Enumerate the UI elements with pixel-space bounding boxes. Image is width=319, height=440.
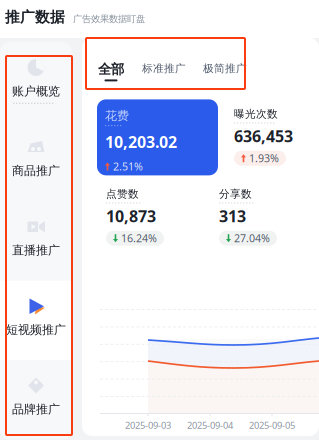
button[interactable]: 极简推广 — [203, 61, 247, 75]
button[interactable]: 全部 — [98, 61, 124, 81]
button[interactable]: 商品推广 — [0, 121, 72, 201]
staticText: 标准推广 — [142, 62, 186, 75]
staticText: 27.04% — [234, 231, 270, 245]
staticText: 点赞数 — [106, 187, 139, 200]
staticText: 商品推广 — [12, 163, 60, 178]
staticText: 分享数 — [219, 187, 252, 200]
staticText: 极简推广 — [203, 62, 247, 75]
button[interactable]: 品牌推广 — [0, 360, 72, 439]
staticText: 账户概览 — [12, 84, 60, 99]
staticText: 直播推广 — [12, 243, 60, 258]
button[interactable]: 短视频推广 — [0, 280, 72, 360]
staticText: 16.24% — [121, 231, 157, 245]
staticText: 1.93% — [249, 151, 279, 165]
staticText: 推广数据 — [5, 8, 65, 26]
staticText: 曝光次数 — [234, 107, 278, 120]
staticText: 10,873 — [106, 205, 156, 227]
staticText: 品牌推广 — [12, 402, 60, 417]
staticText: 2025-09-04 — [187, 419, 233, 431]
staticText: 短视频推广 — [6, 322, 66, 337]
staticText: 全部 — [98, 61, 124, 77]
staticText: 花费 — [105, 108, 129, 123]
staticText: 2025-09-05 — [249, 419, 295, 431]
staticText: 广告效果数据盯盘 — [73, 13, 145, 25]
staticText: 313 — [219, 205, 246, 227]
staticText: 636,453 — [234, 125, 293, 147]
staticText: 2025-09-03 — [125, 419, 171, 431]
staticText: 10,203.02 — [105, 131, 177, 152]
button[interactable]: 账户概览 — [0, 42, 72, 121]
staticText: 2.51% — [113, 159, 143, 174]
button[interactable]: 直播推广 — [0, 201, 72, 280]
button[interactable]: 标准推广 — [142, 61, 186, 75]
